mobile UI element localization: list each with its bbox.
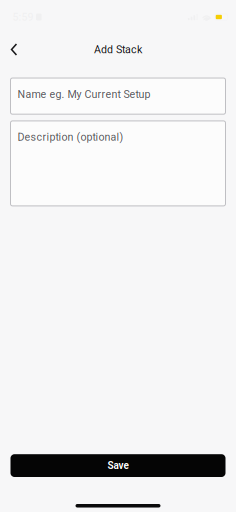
button[interactable]: Name eg. My Current Setup: [10, 78, 225, 114]
staticText: Add Stack: [94, 43, 142, 56]
button[interactable]: Save: [10, 454, 225, 477]
staticText: Name eg. My Current Setup: [17, 88, 150, 100]
staticText: Description (optional): [17, 131, 123, 143]
staticText: Save: [107, 460, 128, 471]
button[interactable]: Description (optional): [10, 121, 225, 206]
button[interactable]: Back: [3, 36, 25, 62]
